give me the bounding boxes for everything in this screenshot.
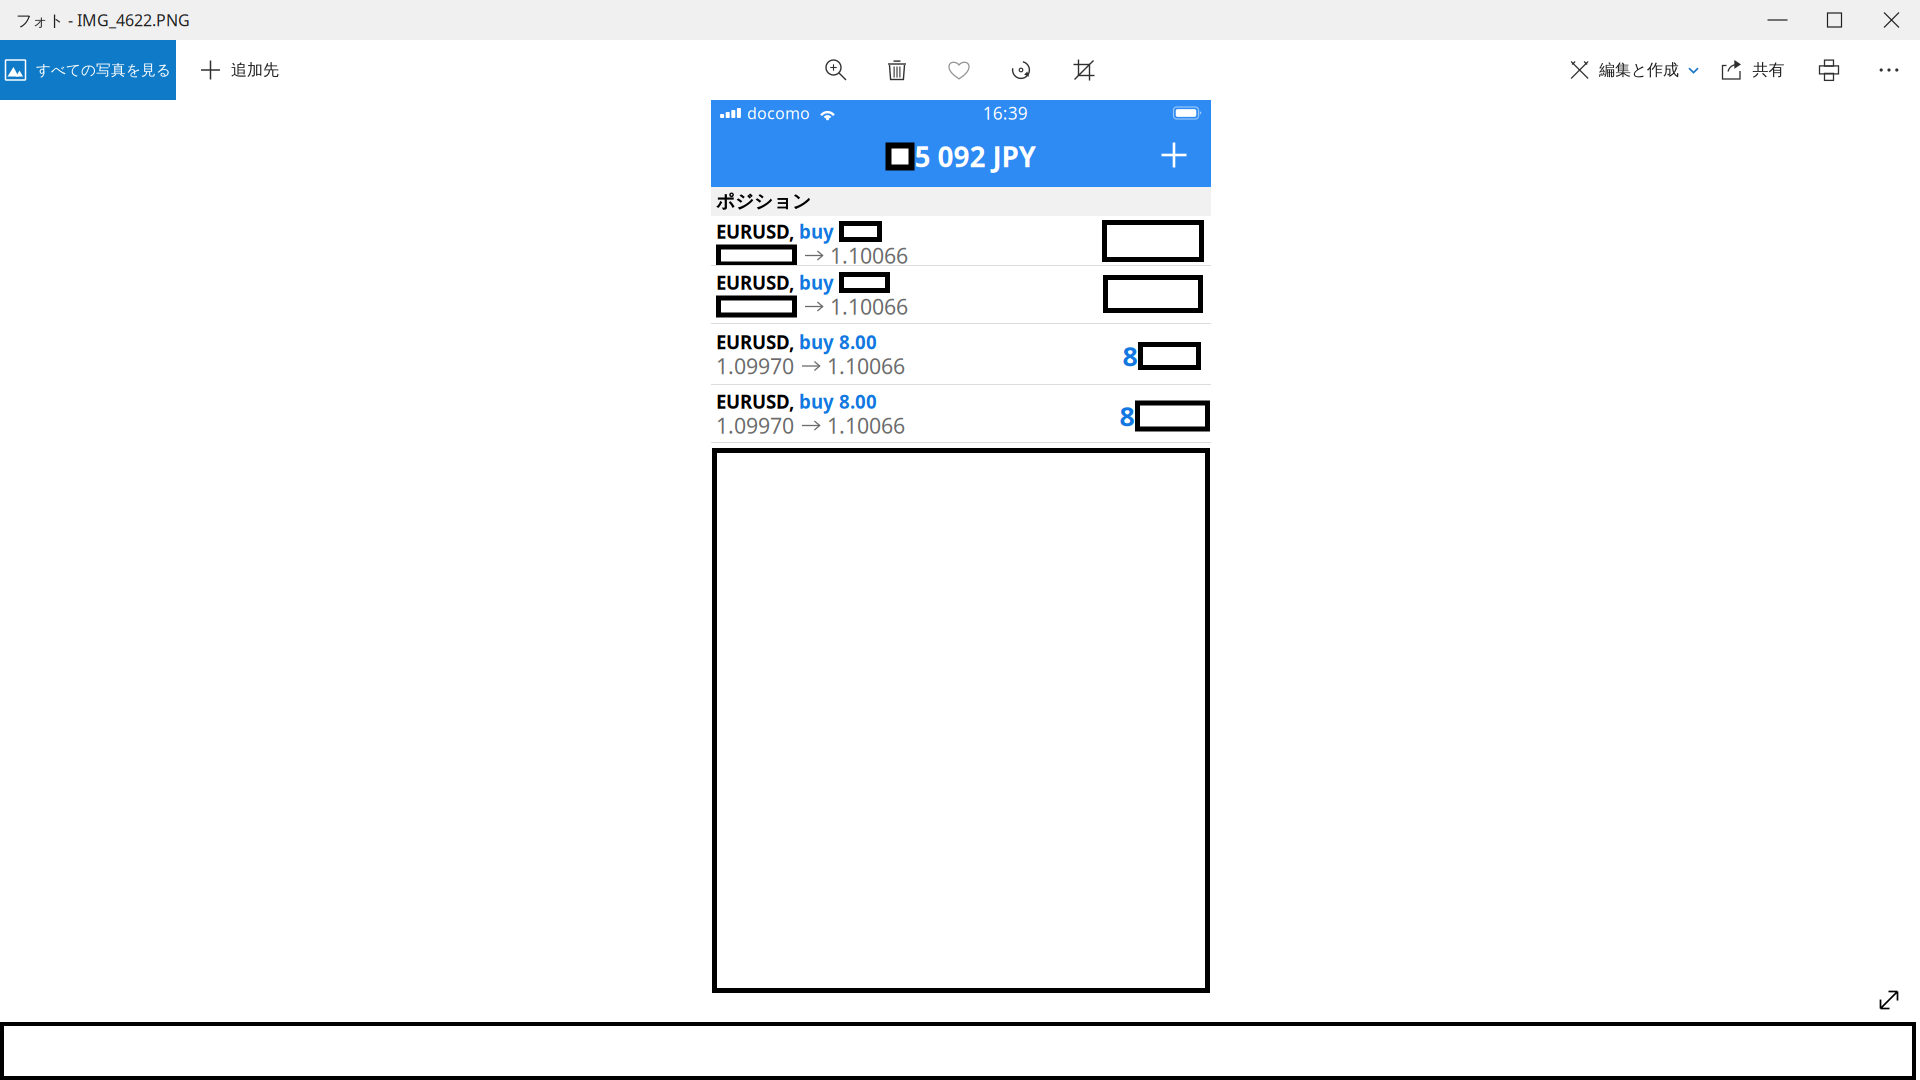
staticText: buy <box>799 389 834 414</box>
staticText: 追加先 <box>231 60 279 80</box>
staticText: 編集と作成 <box>1599 60 1679 80</box>
staticText: 1.10066 <box>827 411 905 440</box>
staticText: 共有 <box>1752 60 1784 80</box>
staticText: 1.09970 <box>716 352 794 380</box>
staticText: EURUSD, <box>716 389 799 414</box>
button[interactable]: Print <box>1799 40 1859 100</box>
button[interactable]: Zoom <box>806 40 866 100</box>
button[interactable]: Maximize <box>1806 0 1863 40</box>
button[interactable]: Rotate <box>991 40 1051 100</box>
button[interactable]: すべての写真を見る <box>0 40 176 100</box>
staticText: 8 <box>1122 338 1137 374</box>
button[interactable]: Favourite <box>929 40 989 100</box>
staticText: docomo <box>747 102 810 124</box>
button[interactable]: Delete <box>867 40 927 100</box>
button[interactable]: 編集と作成 <box>1564 40 1704 100</box>
button[interactable]: Crop <box>1054 40 1114 100</box>
staticText: フォト - IMG_4622.PNG <box>16 9 190 31</box>
staticText: 1.10066 <box>827 352 905 380</box>
button[interactable]: Minimize <box>1749 0 1806 40</box>
staticText: 8 <box>1119 398 1134 434</box>
staticText: buy <box>799 330 834 354</box>
button[interactable]: Add position <box>1146 127 1202 183</box>
button[interactable]: Close <box>1863 0 1920 40</box>
staticText: ポジション <box>716 190 811 213</box>
button[interactable]: EURUSD, <box>711 216 1211 266</box>
button[interactable]: EURUSD, <box>711 385 1211 443</box>
staticText: 1.10066 <box>830 241 908 270</box>
staticText: 1.09970 <box>716 411 794 440</box>
button[interactable]: More options <box>1859 40 1919 100</box>
staticText: EURUSD, <box>716 219 799 244</box>
button[interactable]: EURUSD, <box>711 266 1211 324</box>
staticText: 8.00 <box>834 330 877 354</box>
button[interactable]: 共有 <box>1707 40 1799 100</box>
staticText: buy <box>799 270 834 295</box>
staticText: 16:39 <box>983 101 1028 124</box>
staticText: 5 092 JPY <box>914 138 1036 175</box>
staticText: 8.00 <box>834 389 877 414</box>
staticText: EURUSD, <box>716 270 799 295</box>
staticText: 1.10066 <box>830 292 908 321</box>
staticText: buy <box>799 219 834 244</box>
button[interactable]: EURUSD, <box>711 324 1211 385</box>
staticText: すべての写真を見る <box>36 61 171 79</box>
staticText: EURUSD, <box>716 330 799 354</box>
button[interactable]: 追加先 <box>194 40 286 100</box>
